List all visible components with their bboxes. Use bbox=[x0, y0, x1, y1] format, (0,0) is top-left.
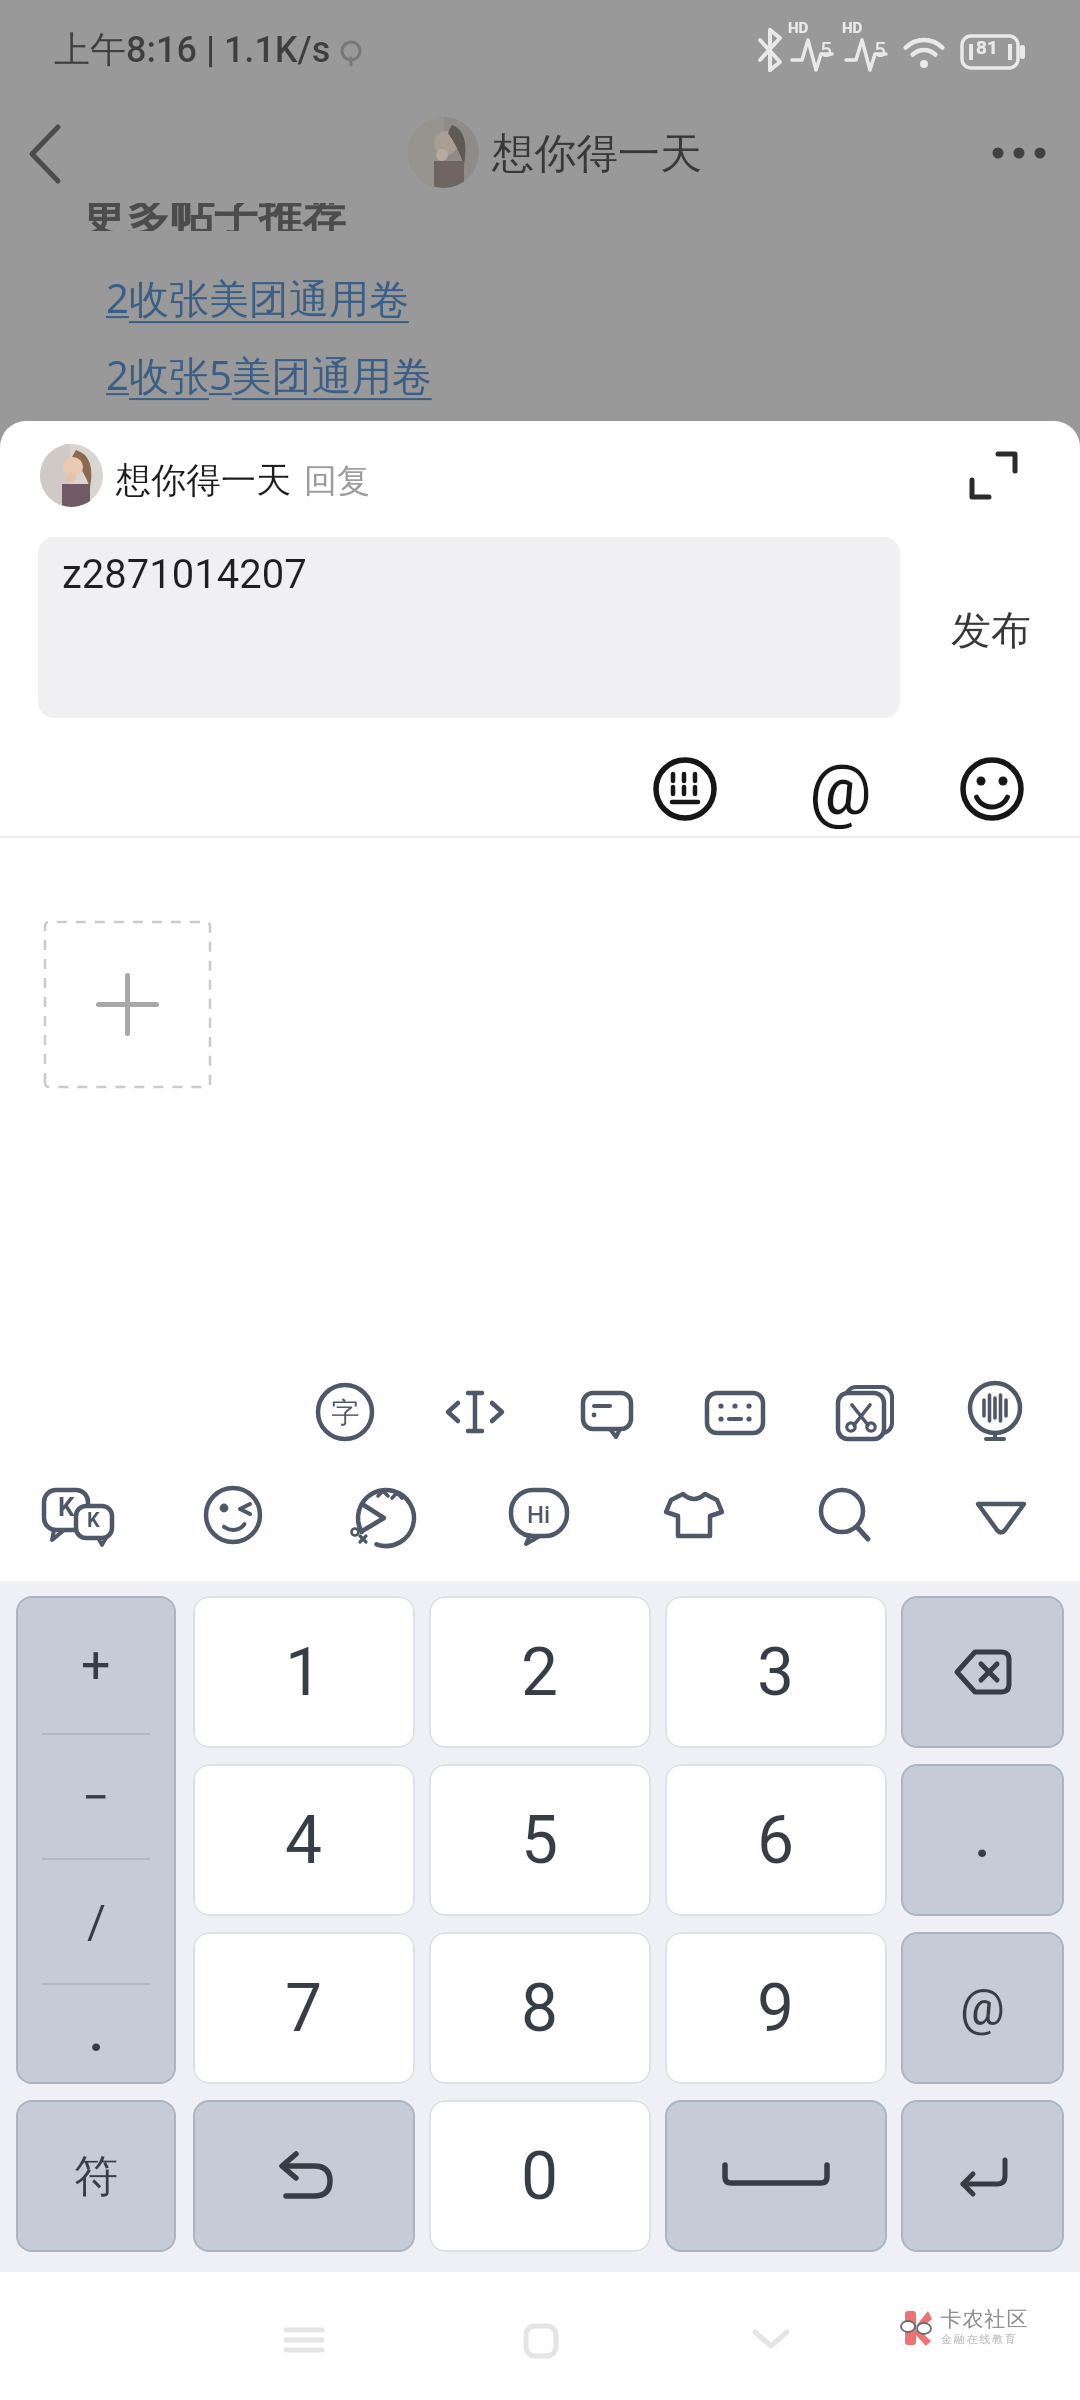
staticText: . bbox=[975, 1811, 990, 1870]
staticText: 3 bbox=[757, 1634, 795, 1711]
button[interactable] bbox=[752, 2328, 790, 2352]
staticText: HD bbox=[842, 19, 863, 37]
staticText: @ bbox=[809, 749, 872, 829]
staticText: + bbox=[81, 1635, 111, 1696]
button[interactable]: 发布 bbox=[936, 600, 1046, 660]
staticText: − bbox=[82, 1769, 110, 1825]
button[interactable]: z2871014207 bbox=[38, 537, 900, 718]
staticText: 卡农社区 bbox=[940, 2306, 1028, 2332]
staticText: 想你得一天 bbox=[492, 128, 702, 181]
staticText: 5 bbox=[521, 1802, 559, 1879]
staticText: 金融在线教育 bbox=[941, 2332, 1018, 2346]
button[interactable] bbox=[964, 1381, 1026, 1443]
staticText: 81 bbox=[976, 36, 998, 58]
button[interactable]: 0 bbox=[429, 2100, 651, 2252]
button[interactable] bbox=[193, 2100, 415, 2252]
button[interactable] bbox=[704, 1381, 766, 1443]
button[interactable]: 6 bbox=[665, 1764, 887, 1916]
button[interactable]: 2 bbox=[429, 1596, 651, 1748]
staticText: 1 bbox=[285, 1634, 323, 1711]
staticText: 8 bbox=[521, 1970, 559, 2047]
button[interactable]: 9 bbox=[665, 1932, 887, 2084]
button[interactable] bbox=[834, 1381, 896, 1443]
button[interactable]: K bbox=[40, 1484, 118, 1548]
staticText: 2 bbox=[521, 1634, 559, 1711]
staticText: K bbox=[58, 1492, 75, 1522]
staticText: @ bbox=[960, 1979, 1005, 2038]
staticText: 4 bbox=[285, 1802, 323, 1879]
staticText: 5 bbox=[874, 38, 886, 63]
button[interactable] bbox=[576, 1381, 638, 1443]
staticText: 更多帖子推荐 bbox=[82, 203, 346, 231]
staticText: 5 bbox=[820, 38, 832, 63]
staticText: 字 bbox=[331, 1395, 359, 1430]
staticText: 符 bbox=[74, 2149, 118, 2204]
staticText: / bbox=[87, 1895, 106, 1949]
button[interactable]: . bbox=[901, 1764, 1064, 1916]
button[interactable]: @ bbox=[806, 749, 874, 829]
staticText: 7 bbox=[285, 1970, 323, 2047]
button[interactable]: 符 bbox=[16, 2100, 176, 2252]
button[interactable] bbox=[352, 1484, 418, 1550]
button[interactable] bbox=[665, 2100, 887, 2252]
button[interactable]: 3 bbox=[665, 1596, 887, 1748]
button[interactable] bbox=[40, 444, 103, 507]
staticText: K bbox=[87, 1508, 100, 1531]
staticText: 0 bbox=[521, 2138, 559, 2215]
button[interactable]: 8 bbox=[429, 1932, 651, 2084]
button[interactable] bbox=[524, 2324, 558, 2358]
button[interactable]: 字 bbox=[314, 1381, 376, 1443]
button[interactable] bbox=[10, 112, 90, 192]
button[interactable]: 7 bbox=[193, 1932, 415, 2084]
button[interactable]: 5 bbox=[429, 1764, 651, 1916]
button[interactable] bbox=[986, 140, 1056, 166]
staticText: 6 bbox=[757, 1802, 795, 1879]
button[interactable]: 2收张美团通用卷 bbox=[106, 270, 409, 325]
button[interactable] bbox=[284, 2326, 324, 2356]
button[interactable] bbox=[444, 1381, 506, 1443]
button[interactable] bbox=[901, 2100, 1064, 2252]
button[interactable]: 2收张5美团通用卷 bbox=[106, 347, 432, 402]
staticText: Hi bbox=[527, 1501, 551, 1529]
button[interactable] bbox=[202, 1484, 264, 1546]
button[interactable] bbox=[968, 450, 1020, 502]
staticText: HD bbox=[788, 19, 809, 37]
button[interactable]: 4 bbox=[193, 1764, 415, 1916]
staticText: 发布 bbox=[951, 605, 1031, 655]
button[interactable]: @ bbox=[901, 1932, 1064, 2084]
button[interactable] bbox=[16, 1596, 176, 2084]
staticText: 上午8:16 | 1.1K/s bbox=[54, 27, 331, 72]
button[interactable] bbox=[960, 757, 1024, 821]
staticText: z2871014207 bbox=[62, 551, 307, 598]
button[interactable] bbox=[44, 921, 211, 1088]
button[interactable]: 1 bbox=[193, 1596, 415, 1748]
button[interactable]: Hi bbox=[508, 1484, 570, 1546]
staticText: . bbox=[89, 2005, 104, 2064]
staticText: 2收张美团通用卷 bbox=[106, 270, 409, 325]
button[interactable] bbox=[814, 1484, 878, 1548]
button[interactable] bbox=[901, 1596, 1064, 1748]
button[interactable] bbox=[653, 757, 717, 821]
button[interactable] bbox=[970, 1484, 1032, 1546]
staticText: 回复 bbox=[304, 460, 370, 502]
staticText: 9 bbox=[757, 1970, 795, 2047]
staticText: 想你得一天 bbox=[116, 458, 291, 502]
button[interactable] bbox=[662, 1484, 726, 1546]
staticText: 2收张5美团通用卷 bbox=[106, 347, 432, 402]
